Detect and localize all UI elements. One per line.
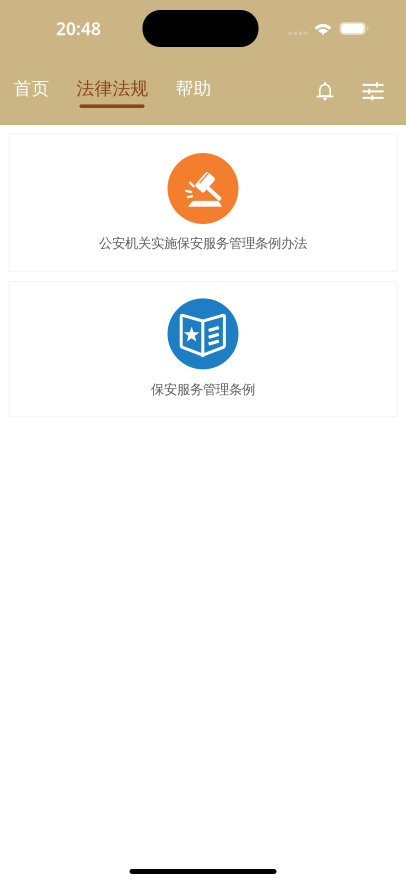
- staticText: 保安服务管理条例: [151, 381, 255, 398]
- button[interactable]: 保安服务管理条例: [9, 281, 397, 417]
- staticText: 法律法规: [76, 77, 148, 100]
- button[interactable]: 公安机关实施保安服务管理条例办法: [9, 134, 397, 271]
- button[interactable]: Notifications: [302, 72, 353, 110]
- staticText: 首页: [13, 77, 49, 100]
- button[interactable]: 首页: [0, 67, 63, 114]
- button[interactable]: Settings: [353, 72, 394, 110]
- button[interactable]: 帮助: [162, 67, 225, 114]
- staticText: 公安机关实施保安服务管理条例办法: [99, 235, 307, 251]
- staticText: 20:48: [56, 17, 101, 40]
- staticText: 帮助: [175, 77, 211, 100]
- button[interactable]: 法律法规: [63, 67, 162, 114]
